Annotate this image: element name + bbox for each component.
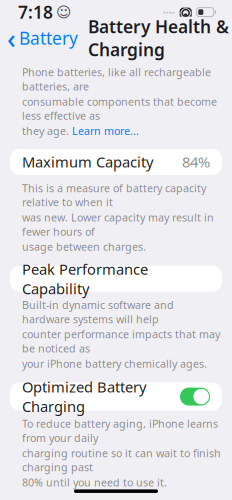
staticText: Optimized Battery Charging bbox=[22, 377, 146, 416]
staticText: Phone batteries, like all rechargeable b… bbox=[22, 65, 211, 93]
staticText: ···· bbox=[163, 4, 175, 20]
staticText: was new. Lower capacity may result in fe… bbox=[22, 210, 214, 239]
staticText: Learn more... bbox=[72, 124, 139, 138]
staticText: ‹ bbox=[7, 20, 16, 56]
staticText: usage between charges. bbox=[22, 240, 146, 254]
staticText: consumable components that become less e… bbox=[22, 94, 217, 123]
staticText: Built-in dynamic software and hardware s… bbox=[22, 298, 174, 326]
staticText: they age. bbox=[22, 124, 72, 138]
staticText: Battery Health & Charging bbox=[88, 15, 229, 61]
staticText: 84% bbox=[182, 152, 210, 172]
button[interactable]: Optimized Battery Charging bbox=[10, 383, 222, 411]
staticText: 80% until you need to use it. bbox=[22, 475, 167, 489]
staticText: your iPhone battery chemically ages. bbox=[22, 356, 207, 371]
staticText: Battery bbox=[19, 27, 78, 50]
staticText: This is a measure of battery capacity re… bbox=[22, 181, 206, 209]
staticText: To reduce battery aging, iPhone learns f… bbox=[22, 417, 218, 445]
staticText: charging routine so it can wait to finis… bbox=[22, 446, 221, 474]
staticText: 7:18 bbox=[18, 1, 53, 24]
staticText: Maximum Capacity bbox=[22, 152, 153, 172]
staticText: ☺ bbox=[56, 4, 71, 20]
button[interactable]: ‹ bbox=[0, 16, 78, 60]
staticText: Peak Performance Capability bbox=[22, 259, 148, 298]
staticText: counter performance impacts that may be … bbox=[22, 327, 220, 355]
